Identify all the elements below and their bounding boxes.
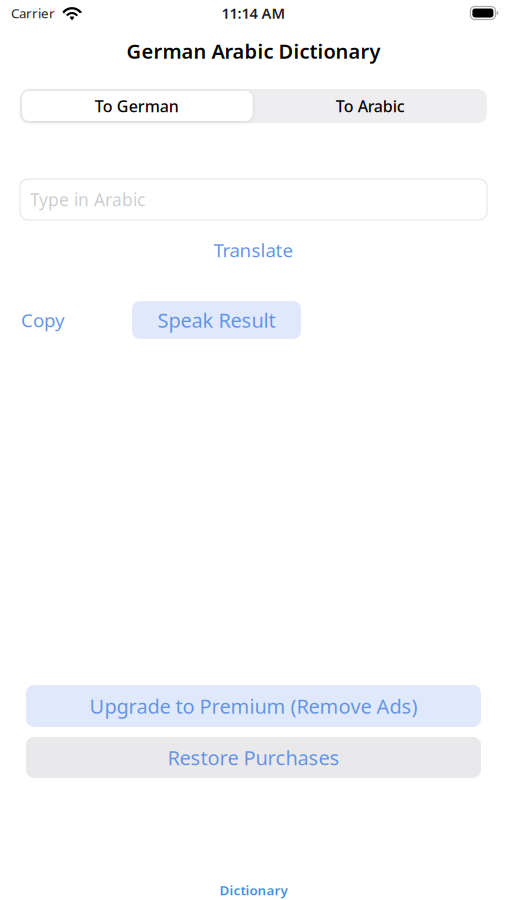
button[interactable]: Translate (0, 240, 507, 260)
button[interactable]: To German (20, 89, 253, 123)
staticText: Carrier (11, 4, 55, 22)
staticText: Type in Arabic (30, 188, 145, 211)
staticText: Speak Result (157, 307, 275, 333)
staticText: 11:14 AM (221, 3, 285, 23)
button[interactable]: Restore Purchases (26, 737, 481, 778)
button[interactable]: Upgrade to Premium (Remove Ads) (26, 685, 481, 727)
staticText: Translate (213, 238, 293, 262)
button[interactable]: Speak Result (132, 301, 301, 339)
staticText: Upgrade to Premium (Remove Ads) (89, 693, 417, 719)
staticText: Restore Purchases (167, 744, 339, 771)
button[interactable]: To Arabic (253, 89, 487, 123)
staticText: Copy (21, 308, 65, 332)
staticText: Dictionary (219, 881, 287, 899)
staticText: German Arabic Dictionary (126, 38, 380, 64)
button[interactable]: Dictionary (0, 880, 507, 900)
button[interactable]: Type in Arabic (20, 179, 487, 220)
staticText: To German (95, 95, 179, 117)
staticText: To Arabic (336, 95, 405, 117)
button[interactable]: Copy (0, 301, 86, 339)
